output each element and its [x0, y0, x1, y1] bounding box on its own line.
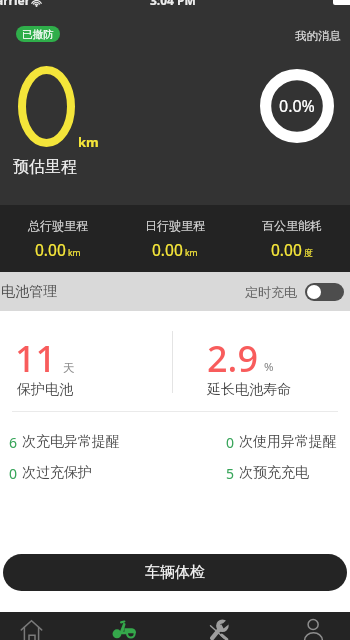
staticText: 总行驶里程: [28, 218, 88, 233]
staticText: 次使用异常提醒: [239, 433, 337, 451]
staticText: 0: [9, 464, 18, 483]
staticText: 6: [9, 433, 18, 452]
staticText: 车辆体检: [145, 563, 205, 582]
staticText: 已撤防: [22, 28, 54, 41]
staticText: 天: [63, 361, 75, 375]
staticText: 3:04 PM: [150, 0, 196, 8]
staticText: 我的消息: [295, 29, 341, 43]
button[interactable]: 0: [9, 462, 92, 484]
staticText: 0.00: [271, 239, 302, 260]
button[interactable]: Profile: [289, 612, 338, 640]
staticText: 次充电异常提醒: [22, 433, 120, 451]
button[interactable]: 已撤防: [16, 26, 60, 42]
staticText: 日行驶里程: [145, 218, 205, 233]
staticText: 保护电池: [17, 381, 73, 399]
staticText: 电池管理: [1, 283, 57, 301]
staticText: km: [68, 247, 81, 259]
button[interactable]: 我的消息: [292, 27, 344, 45]
button[interactable]: Vehicle: [97, 612, 153, 640]
staticText: 2.9: [207, 334, 258, 383]
staticText: 11: [15, 334, 57, 383]
staticText: arrier: [0, 0, 31, 8]
staticText: km: [185, 247, 198, 259]
button[interactable]: 车辆体检: [3, 554, 347, 591]
staticText: 5: [226, 464, 235, 483]
staticText: 0: [226, 433, 235, 452]
staticText: km: [78, 133, 99, 151]
staticText: 度: [304, 248, 313, 259]
staticText: 0.00: [35, 239, 66, 260]
button[interactable]: Service: [194, 612, 244, 640]
button[interactable]: Home: [6, 612, 57, 640]
staticText: 百公里能耗: [262, 218, 322, 233]
staticText: %: [264, 359, 274, 375]
button[interactable]: 6: [9, 431, 120, 453]
button[interactable]: 5: [226, 462, 309, 484]
button[interactable]: 定时充电: [245, 283, 344, 301]
staticText: 次过充保护: [22, 464, 92, 482]
staticText: 0.0%: [279, 95, 315, 117]
button[interactable]: 0: [226, 431, 337, 453]
staticText: 定时充电: [245, 284, 297, 300]
staticText: 0.00: [152, 239, 183, 260]
staticText: 延长电池寿命: [207, 381, 291, 399]
staticText: 次预充充电: [239, 464, 309, 482]
staticText: 预估里程: [13, 157, 77, 177]
